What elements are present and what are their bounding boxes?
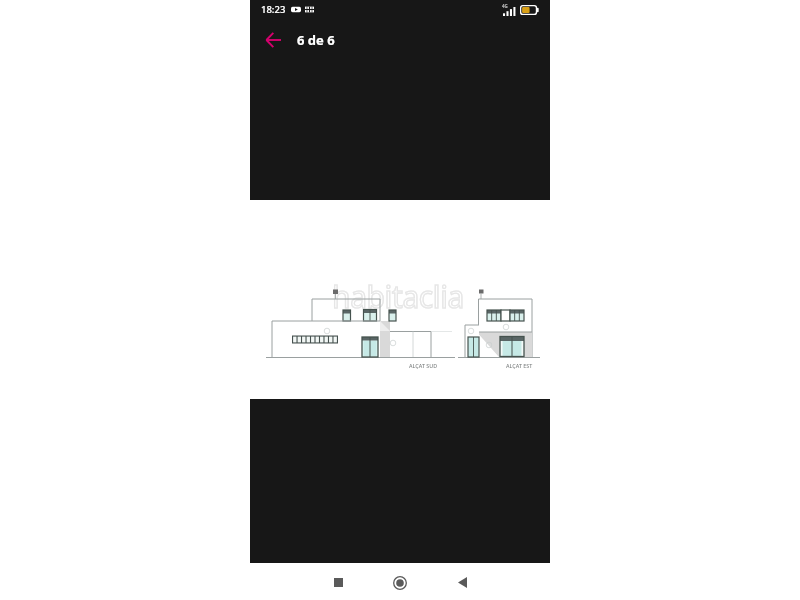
staticText: ALÇAT EST: [506, 362, 533, 369]
staticText: habitaclia: [332, 276, 464, 317]
button[interactable]: Back: [261, 28, 285, 52]
button[interactable]: Back: [438, 564, 486, 600]
staticText: ALÇAT SUD: [409, 362, 438, 369]
button[interactable]: Recents: [314, 564, 362, 600]
staticText: 6 de 6: [297, 31, 335, 49]
staticText: 4G: [502, 3, 508, 9]
staticText: 18:23: [261, 3, 286, 16]
button[interactable]: Home: [376, 564, 424, 600]
button[interactable]: Photo 6 of 6: [250, 0, 550, 563]
